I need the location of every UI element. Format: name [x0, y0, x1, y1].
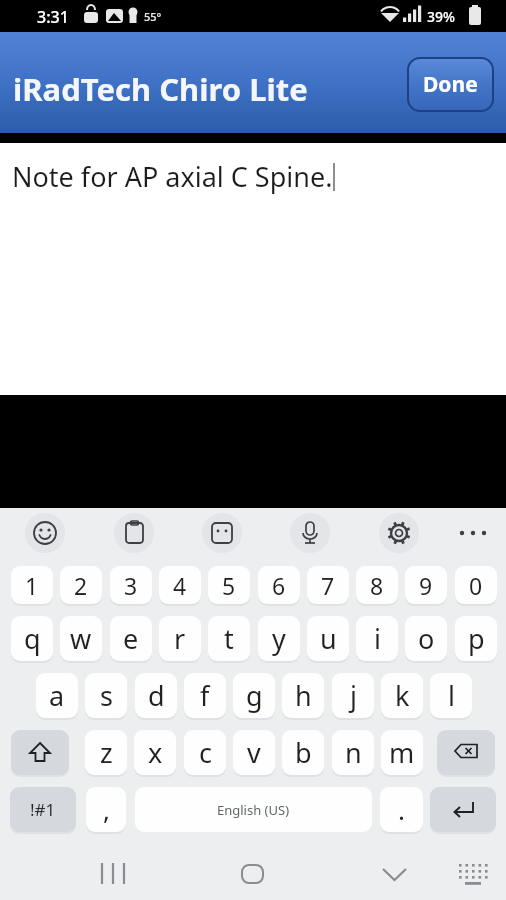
staticText: , — [103, 792, 110, 827]
button[interactable]: c — [184, 730, 226, 775]
staticText: g — [246, 677, 263, 714]
button[interactable]: u — [307, 616, 349, 661]
button[interactable] — [451, 852, 495, 896]
button[interactable] — [437, 730, 495, 775]
button[interactable]: g — [233, 673, 275, 718]
button[interactable] — [372, 852, 416, 896]
button[interactable]: s — [85, 673, 127, 718]
staticText: 5 — [222, 570, 236, 601]
button[interactable]: 8 — [356, 566, 398, 604]
staticText: iRadTech Chiro Lite — [13, 68, 308, 110]
button[interactable]: Done — [409, 59, 492, 110]
staticText: n — [345, 734, 362, 771]
staticText: u — [320, 620, 337, 657]
button[interactable]: . — [380, 787, 423, 832]
button[interactable]: i — [356, 616, 398, 661]
staticText: !#1 — [30, 798, 56, 821]
button[interactable]: n — [332, 730, 374, 775]
button[interactable]: r — [159, 616, 201, 661]
staticText: 8 — [370, 570, 384, 601]
button[interactable]: 0 — [455, 566, 497, 604]
staticText: 9 — [419, 570, 433, 601]
button[interactable]: v — [233, 730, 275, 775]
button[interactable] — [90, 852, 134, 896]
button[interactable]: q — [11, 616, 53, 661]
button[interactable]: j — [332, 673, 374, 718]
button[interactable]: 2 — [60, 566, 102, 604]
staticText: . — [398, 792, 405, 827]
staticText: 2 — [74, 570, 88, 601]
staticText: e — [123, 620, 139, 657]
staticText: 4 — [173, 570, 187, 601]
button[interactable]: h — [282, 673, 324, 718]
button[interactable]: 7 — [307, 566, 349, 604]
button[interactable]: t — [208, 616, 250, 661]
staticText: k — [395, 677, 410, 714]
staticText: h — [295, 677, 312, 714]
button[interactable]: l — [430, 673, 472, 718]
staticText: o — [418, 620, 435, 657]
button[interactable]: y — [258, 616, 300, 661]
staticText: l — [448, 677, 455, 714]
staticText: i — [374, 620, 381, 657]
staticText: t — [224, 620, 234, 657]
button[interactable]: p — [455, 616, 497, 661]
button[interactable]: 9 — [405, 566, 447, 604]
button[interactable]: x — [134, 730, 176, 775]
button[interactable]: Note for AP axial C Spine. — [0, 143, 506, 395]
staticText: Done — [423, 70, 478, 99]
button[interactable]: f — [184, 673, 226, 718]
staticText: 3 — [124, 570, 138, 601]
button[interactable] — [430, 787, 496, 832]
button[interactable] — [290, 513, 330, 553]
button[interactable]: 4 — [159, 566, 201, 604]
button[interactable]: English (US) — [135, 787, 372, 832]
staticText: y — [272, 620, 286, 657]
staticText: m — [389, 734, 415, 771]
staticText: z — [100, 734, 113, 771]
button[interactable]: m — [381, 730, 423, 775]
button[interactable] — [379, 513, 419, 553]
staticText: d — [148, 677, 165, 714]
button[interactable] — [230, 852, 274, 896]
staticText: x — [148, 734, 163, 771]
button[interactable]: 6 — [258, 566, 300, 604]
button[interactable]: , — [86, 787, 126, 832]
staticText: b — [295, 734, 312, 771]
staticText: 39% — [427, 7, 455, 26]
button[interactable] — [202, 513, 242, 553]
button[interactable] — [454, 513, 494, 553]
button[interactable]: 1 — [11, 566, 53, 604]
staticText: 6 — [272, 570, 286, 601]
staticText: c — [199, 734, 212, 771]
staticText: 55° — [144, 9, 162, 24]
button[interactable]: 3 — [110, 566, 152, 604]
staticText: Note for AP axial C Spine. — [12, 158, 333, 195]
staticText: s — [100, 677, 113, 714]
button[interactable]: a — [36, 673, 78, 718]
staticText: 1 — [25, 570, 39, 601]
button[interactable]: 5 — [208, 566, 250, 604]
button[interactable]: k — [381, 673, 423, 718]
button[interactable]: z — [85, 730, 127, 775]
button[interactable]: d — [135, 673, 177, 718]
button[interactable]: !#1 — [10, 787, 76, 832]
button[interactable]: w — [60, 616, 102, 661]
staticText: j — [350, 677, 357, 714]
staticText: v — [247, 734, 261, 771]
staticText: r — [174, 620, 186, 657]
staticText: f — [200, 677, 210, 714]
staticText: q — [24, 620, 41, 657]
staticText: 7 — [321, 570, 335, 601]
staticText: English (US) — [217, 801, 290, 819]
button[interactable]: e — [110, 616, 152, 661]
button[interactable]: o — [405, 616, 447, 661]
staticText: p — [468, 620, 485, 657]
staticText: w — [70, 620, 92, 657]
staticText: 0 — [469, 570, 483, 601]
button[interactable] — [114, 513, 154, 553]
staticText: a — [49, 677, 65, 714]
button[interactable] — [25, 513, 65, 553]
button[interactable]: b — [282, 730, 324, 775]
button[interactable] — [11, 730, 69, 775]
